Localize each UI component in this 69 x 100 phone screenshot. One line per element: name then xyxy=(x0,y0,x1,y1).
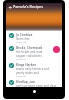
staticText: Pamela's Recipes xyxy=(13,4,43,9)
button[interactable]: Kings Harbor xyxy=(6,61,62,78)
staticText: early societies caste and class xyxy=(16,84,57,87)
staticText: the heads and mud xyxy=(16,50,43,54)
staticText: towns early farmers and xyxy=(16,67,50,71)
staticText: yearly states and xyxy=(16,71,39,75)
staticText: 10:45 AM xyxy=(16,41,27,44)
staticText: Bricks, Chemicals xyxy=(16,46,43,50)
staticText: Kindlup, can xyxy=(16,80,35,84)
staticText: 10:45 AM xyxy=(16,58,27,61)
button[interactable]: Award badge xyxy=(53,46,60,53)
button[interactable]: Jo Cordova xyxy=(6,31,62,44)
button[interactable]: Bricks, Chemicals xyxy=(6,44,62,61)
staticText: Jo Cordova xyxy=(16,33,33,37)
staticText: 10:45 AM xyxy=(16,75,27,78)
button[interactable]: Back xyxy=(7,4,13,10)
staticText: copper civilizations xyxy=(16,54,42,58)
button[interactable]: Home xyxy=(33,90,36,93)
staticText: Some title xyxy=(16,37,30,41)
staticText: Kings Harbor xyxy=(16,63,37,67)
button[interactable]: Kindlup, can xyxy=(6,78,62,87)
